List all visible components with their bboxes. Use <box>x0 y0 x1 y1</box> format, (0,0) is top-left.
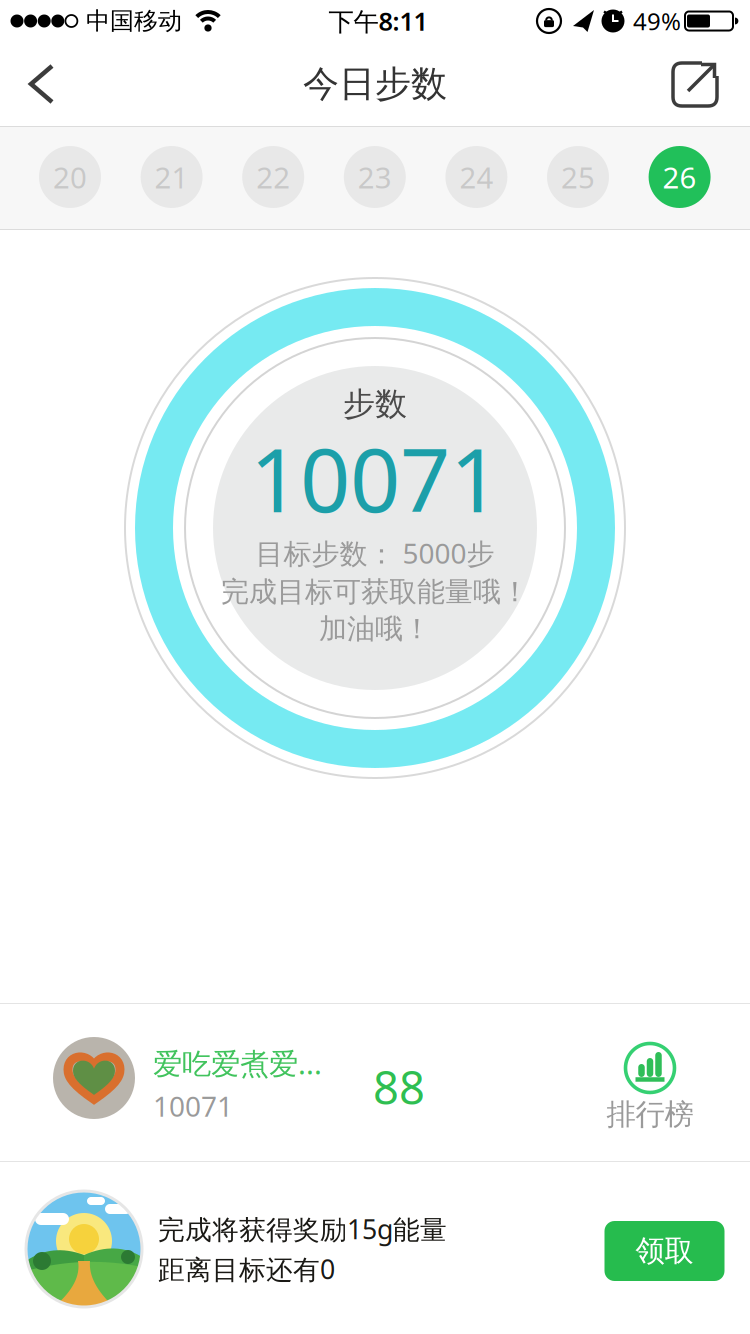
button[interactable]: 24 <box>445 146 507 208</box>
staticText: 今日步数 <box>303 62 447 106</box>
staticText: 完成目标可获取能量哦！ <box>221 575 529 609</box>
staticText: 爱吃爱煮爱... <box>153 1043 322 1082</box>
staticText: 21 <box>155 157 189 196</box>
staticText: 24 <box>459 157 493 196</box>
staticText: 10071 <box>153 1087 233 1125</box>
staticText: 88 <box>373 1057 425 1117</box>
button[interactable]: 20 <box>39 146 101 208</box>
button[interactable]: 25 <box>547 146 609 208</box>
staticText: 距离目标还有0 <box>158 1251 335 1287</box>
staticText: 49% <box>633 5 681 37</box>
staticText: 23 <box>358 157 392 196</box>
button[interactable]: 用户头像 <box>53 1037 135 1119</box>
staticText: 目标步数： 5000步 <box>255 534 494 572</box>
staticText: 排行榜 <box>606 1096 693 1132</box>
staticText: 下午8:11 <box>328 4 427 38</box>
button[interactable]: 排行榜 <box>606 1043 693 1132</box>
button[interactable]: 22 <box>242 146 304 208</box>
button[interactable]: 领取 <box>604 1221 724 1281</box>
button[interactable]: Share <box>672 61 718 107</box>
button[interactable]: Back <box>27 63 57 105</box>
staticText: 加油哦！ <box>319 612 431 646</box>
button[interactable]: 23 <box>344 146 406 208</box>
staticText: 中国移动 <box>86 6 182 36</box>
button[interactable]: 26 <box>649 146 711 208</box>
staticText: 10071 <box>250 420 500 536</box>
staticText: 22 <box>256 157 290 196</box>
button[interactable]: 21 <box>141 146 203 208</box>
staticText: 20 <box>53 157 87 196</box>
staticText: 26 <box>663 157 697 196</box>
staticText: 完成将获得奖励15g能量 <box>158 1211 447 1247</box>
staticText: 步数 <box>343 384 407 424</box>
staticText: 25 <box>561 157 595 196</box>
staticText: 领取 <box>635 1233 693 1269</box>
